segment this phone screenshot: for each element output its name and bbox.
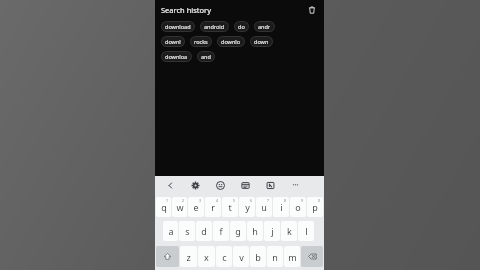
button[interactable]: c xyxy=(216,246,232,267)
button[interactable]: Clipboard xyxy=(233,176,258,195)
button[interactable]: v xyxy=(233,246,249,267)
button[interactable]: 5 xyxy=(222,197,238,217)
button[interactable]: 9 xyxy=(290,197,306,217)
staticText: f xyxy=(219,225,223,237)
button[interactable]: Settings xyxy=(183,176,208,195)
staticText: l xyxy=(305,225,308,237)
staticText: down xyxy=(254,38,269,45)
staticText: c xyxy=(222,251,227,263)
button[interactable]: n xyxy=(267,246,283,267)
staticText: n xyxy=(272,251,278,263)
staticText: h xyxy=(252,225,258,237)
staticText: r xyxy=(211,201,215,213)
button[interactable]: h xyxy=(247,221,263,241)
button[interactable]: 0 xyxy=(307,197,323,217)
staticText: downlo xyxy=(221,38,241,45)
staticText: 1 xyxy=(166,198,169,203)
staticText: o xyxy=(295,201,301,213)
staticText: rocks xyxy=(194,38,208,45)
staticText: x xyxy=(204,251,209,263)
staticText: g xyxy=(235,225,241,237)
staticText: m xyxy=(288,251,297,263)
button[interactable]: d xyxy=(196,221,212,241)
button[interactable]: x xyxy=(198,246,215,267)
staticText: and xyxy=(201,53,211,60)
button[interactable]: z xyxy=(180,246,197,267)
staticText: 2 xyxy=(182,198,185,203)
staticText: s xyxy=(185,225,190,237)
staticText: do xyxy=(238,23,245,30)
button[interactable]: rocks xyxy=(190,36,212,47)
button[interactable]: android xyxy=(200,21,229,32)
button[interactable]: k xyxy=(281,221,297,241)
staticText: Search history xyxy=(161,5,212,15)
button[interactable]: l xyxy=(298,221,314,241)
button[interactable]: 8 xyxy=(273,197,289,217)
staticText: 3 xyxy=(199,198,202,203)
button[interactable]: Clear search history xyxy=(305,3,319,17)
button[interactable]: and xyxy=(197,51,215,62)
button[interactable]: g xyxy=(230,221,246,241)
staticText: p xyxy=(312,201,318,213)
staticText: w xyxy=(176,201,184,213)
staticText: z xyxy=(186,251,191,263)
button[interactable]: 1 xyxy=(156,197,171,217)
button[interactable]: Shift xyxy=(156,246,179,267)
staticText: k xyxy=(287,225,292,237)
staticText: i xyxy=(280,201,283,213)
button[interactable]: Text selection xyxy=(258,176,283,195)
staticText: android xyxy=(204,23,225,30)
staticText: downl xyxy=(165,38,181,45)
button[interactable]: s xyxy=(179,221,195,241)
staticText: e xyxy=(193,201,199,213)
button[interactable]: 3 xyxy=(188,197,204,217)
staticText: andr xyxy=(258,23,271,30)
staticText: download xyxy=(165,23,191,30)
staticText: d xyxy=(201,225,207,237)
button[interactable]: download xyxy=(161,21,195,32)
staticText: j xyxy=(271,225,274,237)
staticText: v xyxy=(239,251,244,263)
button[interactable]: down xyxy=(250,36,273,47)
staticText: 5 xyxy=(233,198,236,203)
button[interactable]: downloa xyxy=(161,51,192,62)
button[interactable]: do xyxy=(234,21,249,32)
button[interactable]: downl xyxy=(161,36,185,47)
staticText: u xyxy=(261,201,267,213)
staticText: 6 xyxy=(250,198,253,203)
button[interactable]: f xyxy=(213,221,229,241)
staticText: downloa xyxy=(165,53,188,60)
staticText: a xyxy=(168,225,174,237)
button[interactable]: 6 xyxy=(239,197,255,217)
staticText: t xyxy=(228,201,232,213)
button[interactable]: Backspace xyxy=(301,246,323,267)
button[interactable]: Back xyxy=(158,176,183,195)
button[interactable]: j xyxy=(264,221,280,241)
button[interactable]: 4 xyxy=(205,197,221,217)
staticText: b xyxy=(255,251,261,263)
button[interactable]: downlo xyxy=(217,36,245,47)
button[interactable]: Stickers xyxy=(208,176,233,195)
staticText: 9 xyxy=(301,198,304,203)
staticText: 0 xyxy=(318,198,321,203)
button[interactable]: More options xyxy=(283,176,308,195)
button[interactable]: 7 xyxy=(256,197,272,217)
button[interactable]: andr xyxy=(254,21,275,32)
staticText: q xyxy=(161,201,167,213)
staticText: 7 xyxy=(267,198,270,203)
button[interactable]: a xyxy=(163,221,178,241)
button[interactable]: m xyxy=(284,246,300,267)
staticText: 4 xyxy=(216,198,219,203)
button[interactable]: b xyxy=(250,246,266,267)
staticText: y xyxy=(245,201,250,213)
button[interactable]: 2 xyxy=(172,197,187,217)
staticText: 8 xyxy=(284,198,287,203)
